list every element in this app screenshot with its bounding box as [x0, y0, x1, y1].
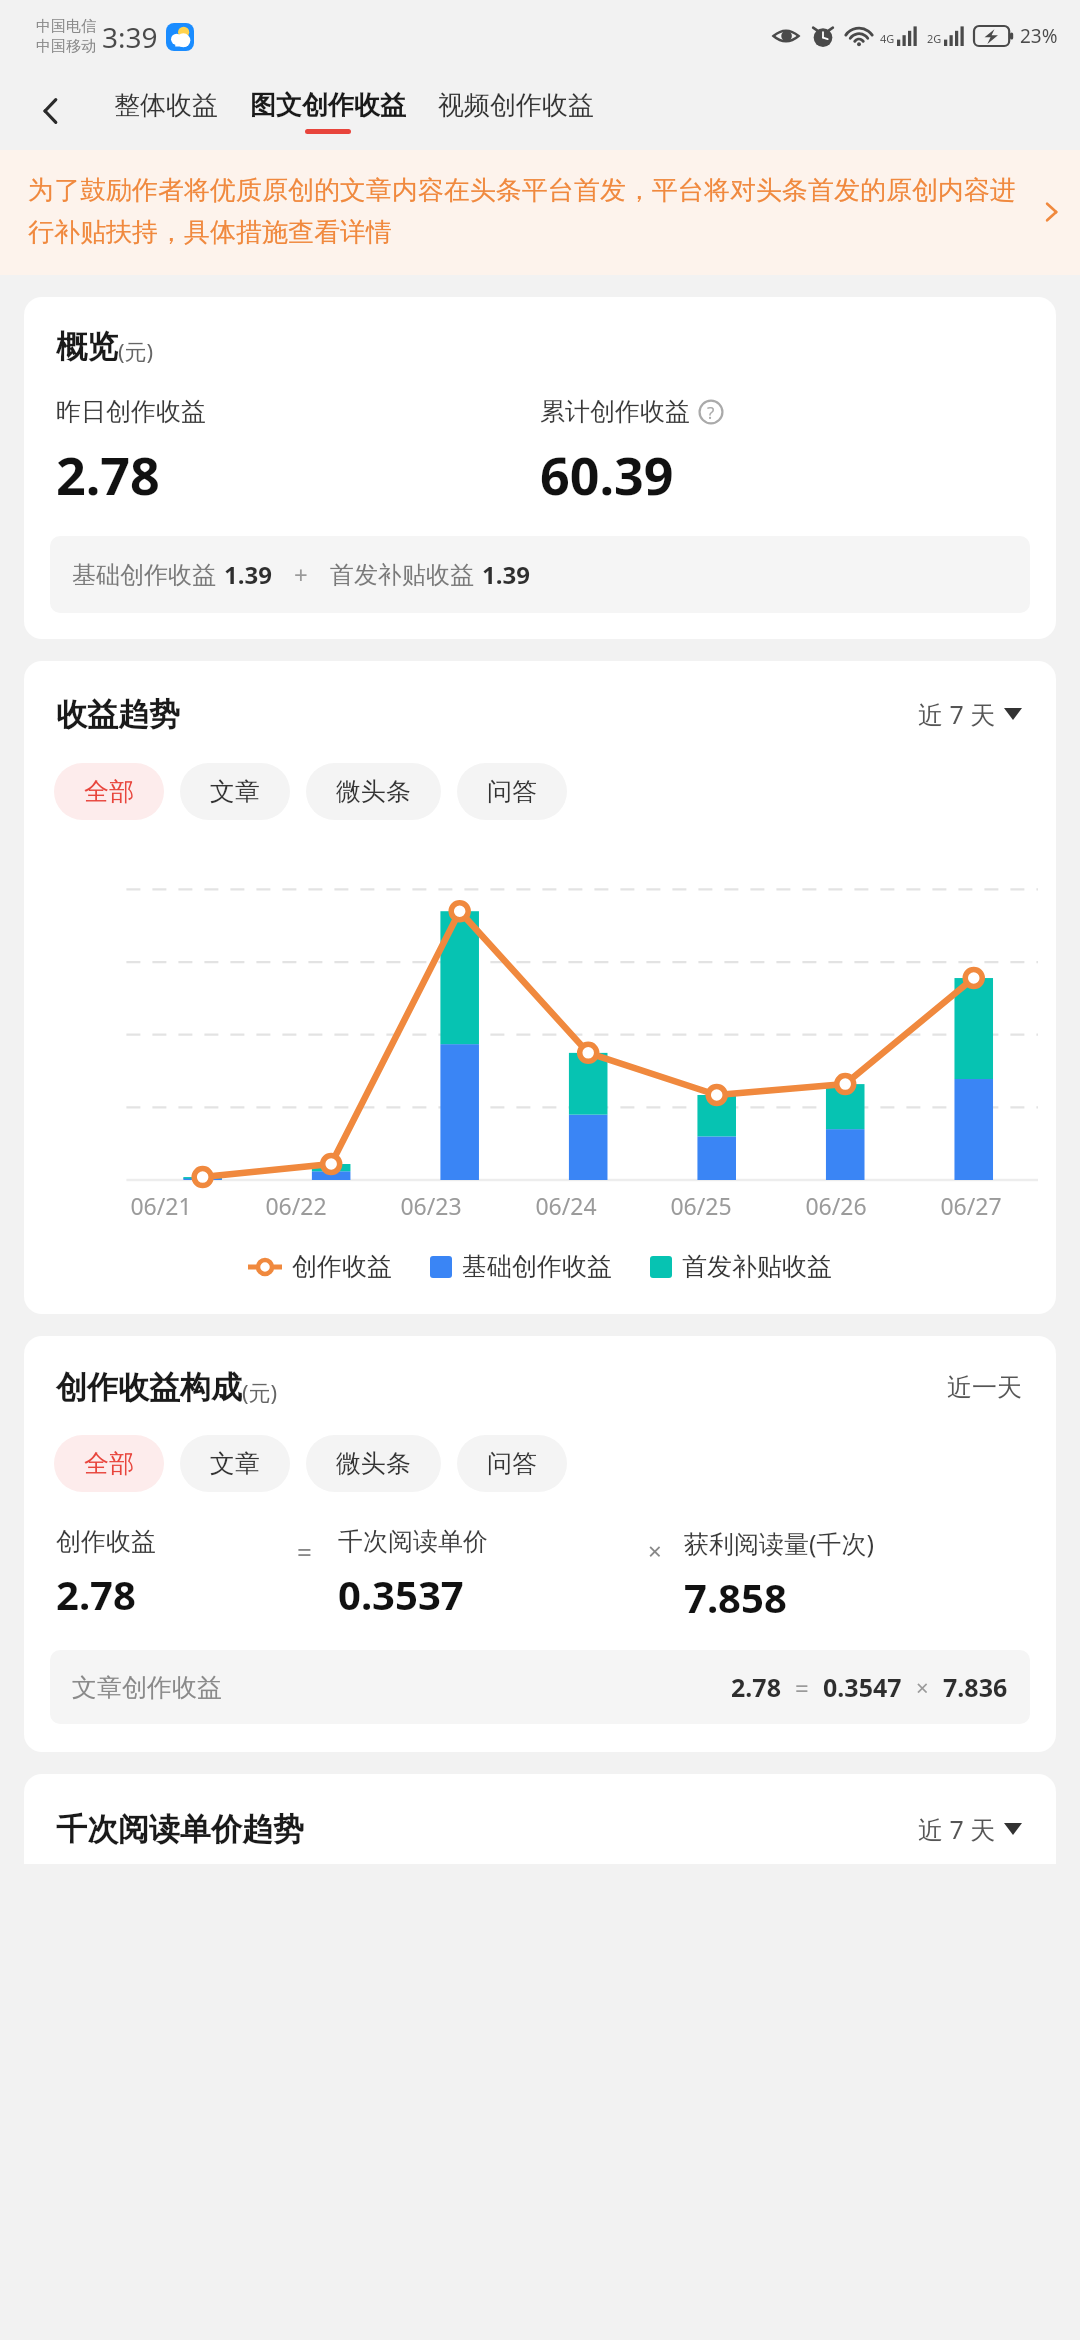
button[interactable]: 全部 — [54, 1435, 164, 1492]
staticText: (元) — [118, 336, 154, 366]
staticText: × — [648, 1534, 662, 1567]
staticText: 全部 — [84, 776, 134, 807]
staticText: 视频创作收益 — [438, 89, 594, 122]
staticText: 近 7 天 — [918, 1812, 996, 1846]
staticText: 2.78 — [56, 439, 160, 510]
staticText: 近 7 天 — [918, 697, 996, 731]
staticText: 全部 — [84, 1448, 134, 1479]
button[interactable]: 近 7 天 — [914, 1808, 1026, 1850]
button[interactable]: 近 7 天 — [914, 693, 1026, 735]
button[interactable]: 整体收益 — [112, 85, 220, 138]
button[interactable]: 微头条 — [306, 1435, 441, 1492]
staticText: ? — [707, 401, 715, 424]
staticText: 06/26 — [805, 1190, 867, 1221]
staticText: 为了鼓励作者将优质原创的文章内容在头条平台首发，平台将对头条首发的原创内容进行补… — [28, 174, 1028, 249]
staticText: 创作收益 — [56, 1526, 156, 1557]
staticText: 获利阅读量(千次) — [684, 1526, 875, 1560]
staticText: 微头条 — [336, 1448, 411, 1479]
staticText: 06/24 — [535, 1190, 597, 1221]
staticText: 06/22 — [265, 1190, 327, 1221]
staticText: 问答 — [487, 776, 537, 807]
staticText: 累计创作收益 — [540, 396, 690, 427]
button[interactable]: 为了鼓励作者将优质原创的文章内容在头条平台首发，平台将对头条首发的原创内容进行补… — [0, 150, 1080, 275]
staticText: 近一天 — [947, 1372, 1022, 1403]
staticText: 创作收益 — [292, 1251, 392, 1282]
staticText: 06/25 — [670, 1190, 732, 1221]
staticText: 60.39 — [540, 439, 674, 510]
staticText: 首发补贴收益 — [330, 560, 474, 590]
staticText: 0.3547 — [823, 1670, 902, 1704]
staticText: 1.39 — [482, 558, 530, 591]
staticText: 中国移动 — [36, 37, 96, 56]
staticText: 06/27 — [940, 1190, 1002, 1221]
staticText: 千次阅读单价趋势 — [56, 1810, 304, 1849]
button[interactable]: Help — [698, 399, 724, 425]
staticText: 2.78 — [56, 1567, 136, 1621]
button[interactable]: 微头条 — [306, 763, 441, 820]
button[interactable]: 问答 — [457, 1435, 567, 1492]
staticText: (元) — [242, 1377, 278, 1407]
staticText: 06/23 — [400, 1190, 462, 1221]
staticText: 2G — [927, 31, 942, 46]
staticText: 基础创作收益 — [72, 560, 216, 590]
staticText: 概览 — [56, 327, 118, 366]
staticText: 文章 — [210, 1448, 260, 1479]
button[interactable]: 视频创作收益 — [436, 85, 596, 138]
staticText: 06/21 — [130, 1190, 192, 1221]
staticText: 收益趋势 — [56, 695, 180, 734]
button[interactable]: 图文创作收益 — [248, 85, 408, 138]
staticText: 7.858 — [684, 1570, 787, 1624]
staticText: 中国电信 — [36, 17, 96, 36]
staticText: 文章 — [210, 776, 260, 807]
staticText: 23% — [1020, 23, 1058, 49]
button[interactable]: 创作收益 — [248, 1251, 392, 1282]
button[interactable]: 文章 — [180, 763, 290, 820]
staticText: = — [795, 1671, 809, 1704]
button[interactable]: Back — [22, 82, 80, 140]
staticText: 微头条 — [336, 776, 411, 807]
staticText: 7.836 — [943, 1670, 1008, 1704]
staticText: 整体收益 — [114, 89, 218, 122]
button[interactable]: 近一天 — [943, 1368, 1026, 1407]
staticText: = — [297, 1534, 312, 1569]
staticText: 创作收益构成 — [56, 1368, 242, 1407]
staticText: 首发补贴收益 — [682, 1251, 832, 1282]
staticText: 千次阅读单价 — [338, 1526, 488, 1557]
staticText: 1.39 — [224, 558, 272, 591]
staticText: × — [916, 1672, 929, 1702]
staticText: 昨日创作收益 — [56, 396, 206, 427]
button[interactable]: 基础创作收益 — [430, 1251, 612, 1282]
staticText: + — [294, 558, 308, 591]
staticText: 图文创作收益 — [250, 89, 406, 122]
button[interactable]: 首发补贴收益 — [650, 1251, 832, 1282]
button[interactable]: 文章 — [180, 1435, 290, 1492]
staticText: 0.3537 — [338, 1567, 464, 1621]
staticText: 3:39 — [102, 18, 158, 56]
staticText: 问答 — [487, 1448, 537, 1479]
staticText: 4G — [880, 31, 895, 46]
button[interactable]: 文章创作收益 — [50, 1650, 1030, 1724]
button[interactable]: 问答 — [457, 763, 567, 820]
staticText: 文章创作收益 — [72, 1672, 222, 1703]
staticText: 2.78 — [731, 1670, 781, 1704]
button[interactable]: 全部 — [54, 763, 164, 820]
staticText: 基础创作收益 — [462, 1251, 612, 1282]
button[interactable]: 基础创作收益 — [50, 536, 1030, 613]
